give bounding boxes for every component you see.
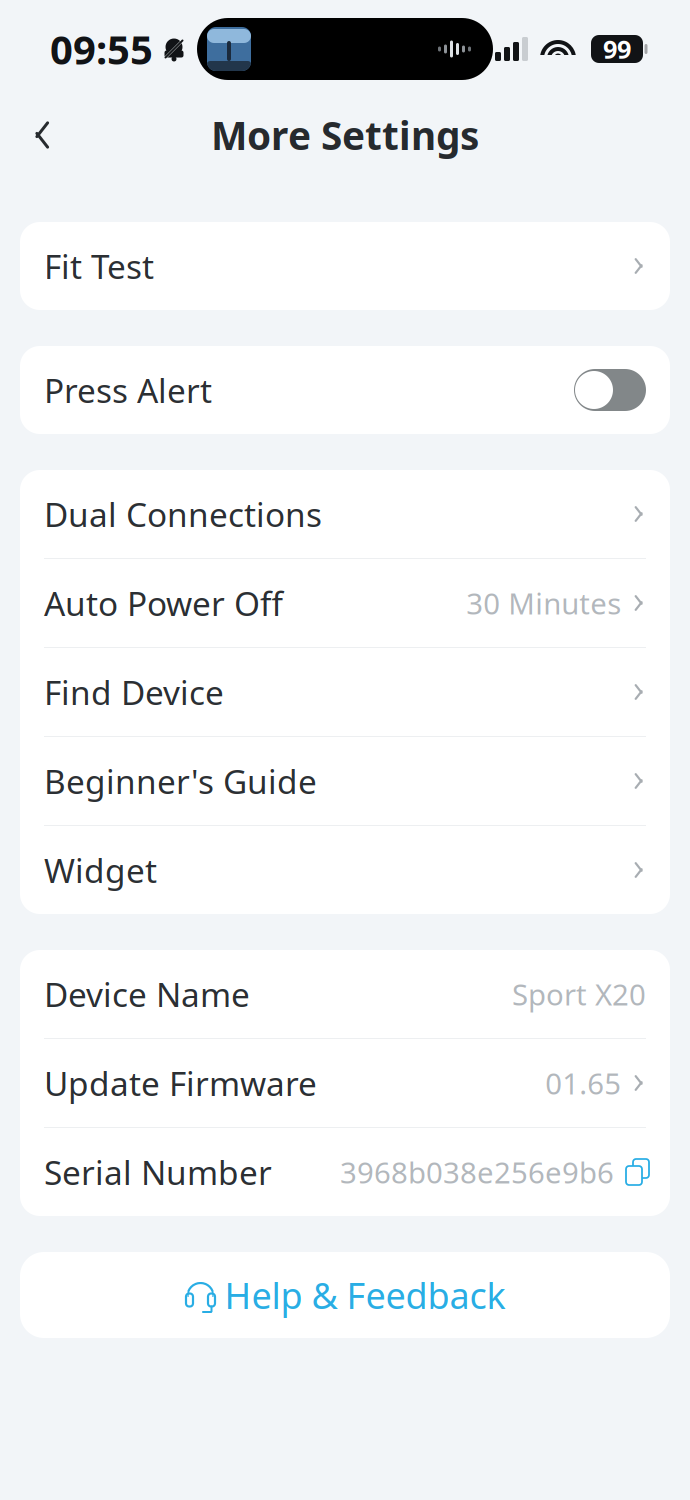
button[interactable]: Copy serial number: [624, 1158, 650, 1186]
staticText: Help & Feedback: [224, 1271, 505, 1319]
staticText: Press Alert: [44, 368, 212, 412]
staticText: Device Name: [44, 972, 250, 1016]
staticText: Find Device: [44, 670, 224, 714]
staticText: Widget: [44, 848, 157, 892]
staticText: 09:55: [50, 22, 153, 75]
button[interactable]: Back: [0, 108, 68, 162]
button[interactable]: Fit Test: [20, 222, 670, 310]
staticText: Dual Connections: [44, 492, 322, 536]
staticText: 3968b038e256e9b6: [340, 1152, 614, 1191]
button[interactable]: Help & Feedback: [0, 1252, 690, 1338]
button[interactable]: Find Device: [20, 648, 670, 736]
staticText: Sport X20: [512, 974, 646, 1013]
staticText: More Settings: [211, 109, 479, 161]
button[interactable]: Dual Connections: [20, 470, 670, 558]
staticText: Update Firmware: [44, 1061, 317, 1105]
staticText: Fit Test: [44, 244, 154, 288]
staticText: Beginner's Guide: [44, 759, 317, 803]
staticText: Auto Power Off: [44, 581, 283, 625]
button[interactable]: Press Alert, off: [20, 346, 670, 434]
staticText: 30 Minutes: [466, 583, 621, 622]
staticText: 01.65: [545, 1063, 621, 1102]
button[interactable]: Beginner's Guide: [20, 737, 670, 825]
button[interactable]: Update Firmware: [20, 1039, 670, 1127]
staticText: 99: [603, 32, 631, 66]
button[interactable]: Widget: [20, 826, 670, 914]
staticText: Serial Number: [44, 1150, 272, 1194]
button[interactable]: Auto Power Off: [20, 559, 670, 647]
